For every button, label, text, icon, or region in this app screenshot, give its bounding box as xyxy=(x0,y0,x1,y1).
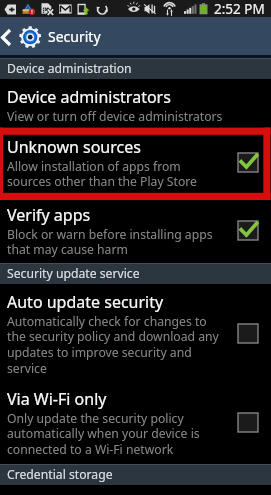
staticText: 2:52 PM xyxy=(214,0,265,17)
button[interactable]: Auto update security xyxy=(0,284,271,381)
staticText: Device administrators xyxy=(7,86,171,108)
staticText: Allow installation of apps from sources … xyxy=(7,158,197,190)
staticText: Auto update security xyxy=(7,291,164,313)
staticText: Security update service xyxy=(7,265,140,282)
button[interactable]: Via Wi-Fi only xyxy=(0,381,271,464)
staticText: Credential storage xyxy=(7,466,113,483)
button[interactable]: Device administrators xyxy=(0,79,271,129)
button[interactable]: Unknown sources xyxy=(0,129,271,197)
staticText: View or turn off device administrators xyxy=(7,108,223,125)
staticText: Device administration xyxy=(7,60,132,77)
staticText: Verify apps xyxy=(7,204,91,226)
staticText: Unknown sources xyxy=(7,136,141,158)
button[interactable]: Verify apps xyxy=(0,197,271,263)
staticText: Automatically check for changes to the s… xyxy=(7,313,219,377)
button[interactable]: Navigate up xyxy=(0,17,18,55)
staticText: Block or warn before installing apps tha… xyxy=(7,226,213,258)
staticText: Via Wi-Fi only xyxy=(7,388,107,410)
staticText: Security xyxy=(48,27,101,46)
staticText: Only update the security policy automati… xyxy=(7,410,200,458)
